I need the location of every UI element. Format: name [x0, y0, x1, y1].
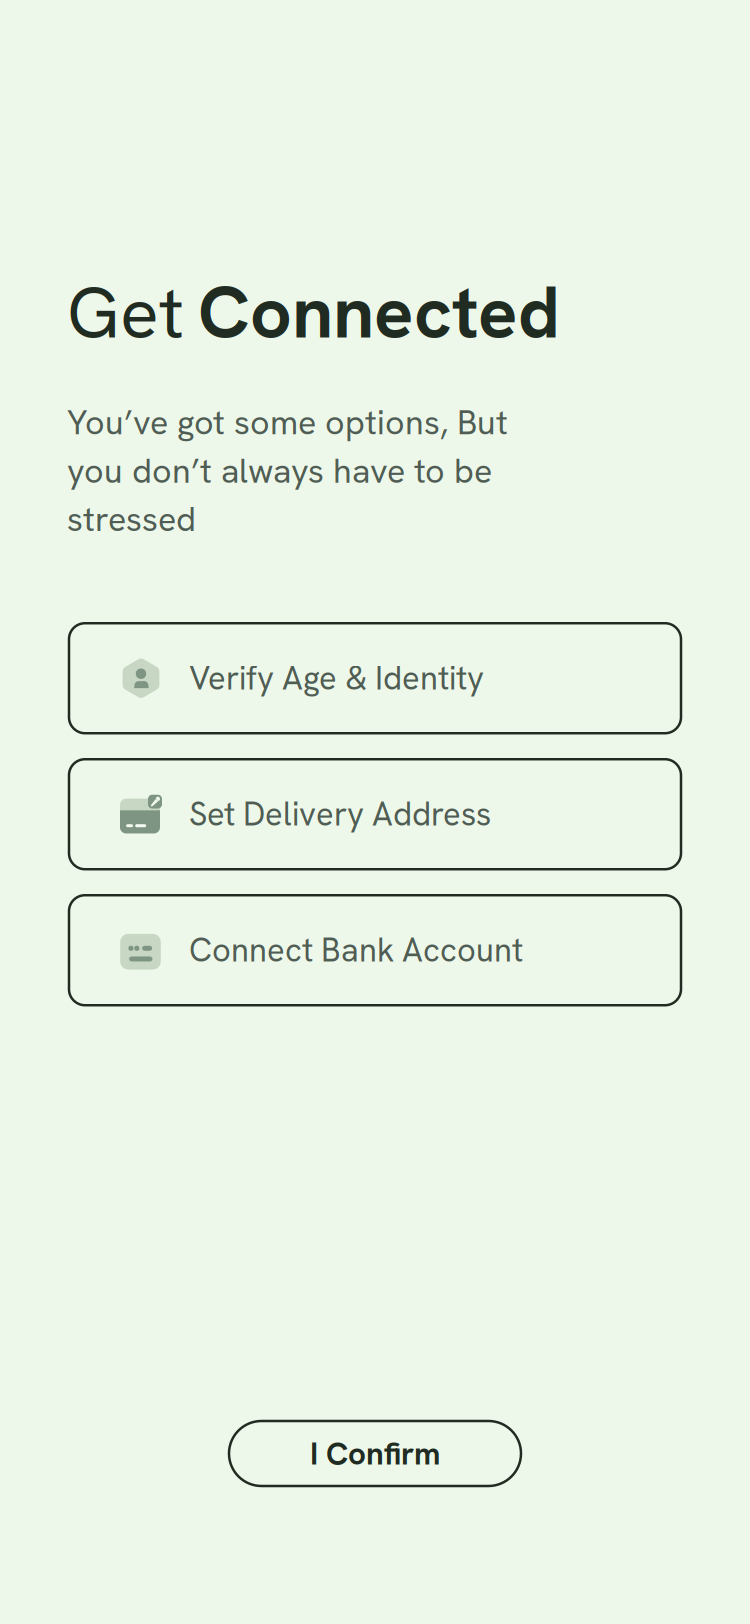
staticText: Get Connected: [67, 265, 560, 358]
staticText: Verify Age & Identity: [189, 657, 484, 699]
staticText: you don’t always have to be: [67, 449, 492, 493]
staticText: You’ve got some options, But: [67, 400, 508, 445]
staticText: I Confirm: [310, 1433, 440, 1474]
staticText: Connect Bank Account: [189, 929, 523, 971]
staticText: Set Delivery Address: [189, 793, 491, 835]
staticText: stressed: [67, 497, 196, 541]
button[interactable]: Set Delivery Address: [69, 759, 681, 869]
button[interactable]: Verify Age & Identity: [69, 623, 681, 733]
button[interactable]: Connect Bank Account: [69, 895, 681, 1005]
button[interactable]: I Confirm: [229, 1421, 521, 1486]
